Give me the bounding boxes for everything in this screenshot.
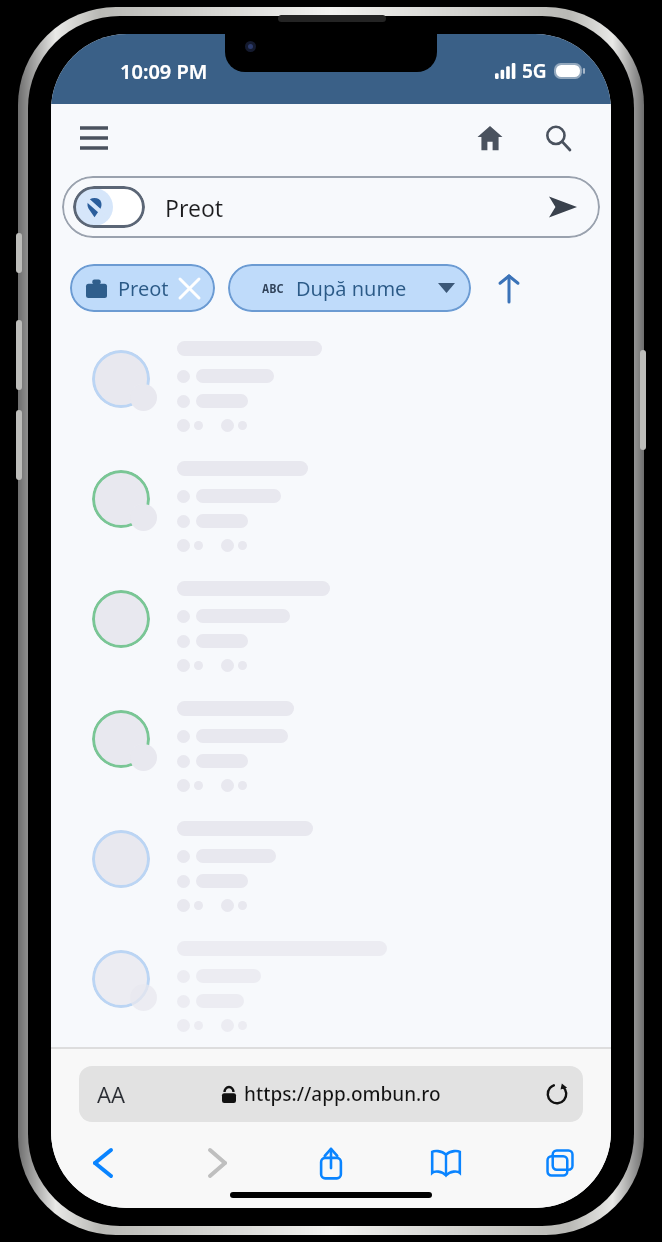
button[interactable]: AA: [79, 1066, 583, 1122]
button[interactable]: Share: [304, 1136, 358, 1190]
button[interactable]: Location toggle: [62, 176, 600, 238]
button[interactable]: [51, 928, 611, 1048]
button[interactable]: [51, 688, 611, 808]
button[interactable]: Preot: [70, 264, 215, 312]
button[interactable]: Back: [75, 1136, 129, 1190]
button[interactable]: Search: [531, 111, 585, 165]
staticText: După nume: [296, 275, 407, 302]
button[interactable]: [51, 448, 611, 568]
staticText: AA: [97, 1079, 126, 1109]
button[interactable]: Location toggle: [73, 186, 145, 228]
button[interactable]: [51, 808, 611, 928]
button[interactable]: Reload: [537, 1074, 577, 1114]
staticText: ABC: [262, 280, 284, 296]
staticText: Preot: [118, 275, 169, 302]
staticText: 5G: [522, 58, 547, 84]
button[interactable]: [51, 328, 611, 448]
button[interactable]: Send: [540, 184, 586, 230]
button[interactable]: [51, 568, 611, 688]
button[interactable]: Home: [463, 111, 517, 165]
staticText: https://app.ombun.ro: [244, 1081, 441, 1107]
button[interactable]: Forward: [190, 1136, 244, 1190]
button[interactable]: Menu: [67, 111, 121, 165]
staticText: Preot: [165, 192, 224, 223]
button[interactable]: Bookmarks: [419, 1136, 473, 1190]
button[interactable]: ABC: [228, 264, 471, 312]
staticText: 10:09 PM: [120, 58, 208, 85]
button[interactable]: Tabs: [533, 1136, 587, 1190]
button[interactable]: Sort ascending: [487, 266, 531, 310]
